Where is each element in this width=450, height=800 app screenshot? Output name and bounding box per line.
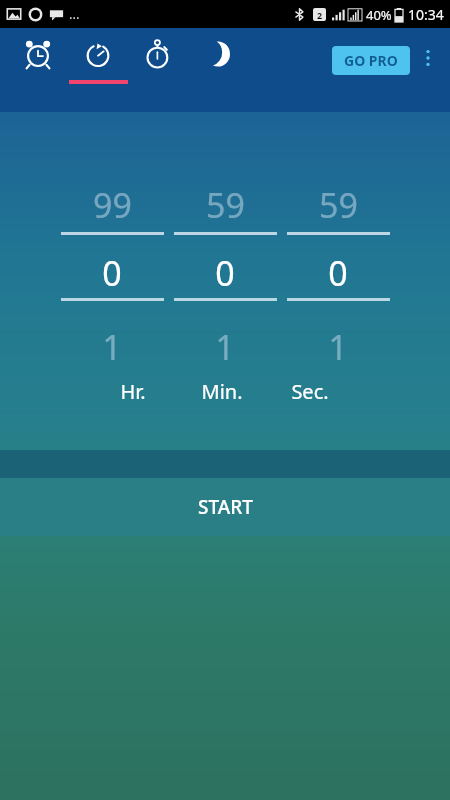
button[interactable]: 59	[288, 182, 388, 228]
button[interactable]: Timer	[68, 28, 128, 98]
button[interactable]: GO PRO	[332, 46, 410, 75]
staticText: Min.	[201, 378, 243, 405]
button[interactable]: 0	[288, 250, 388, 296]
staticText: START	[198, 494, 253, 520]
staticText: 40%	[366, 6, 392, 24]
button[interactable]: START	[0, 478, 450, 536]
staticText: 1	[215, 324, 235, 370]
staticText: 0	[215, 250, 235, 296]
button[interactable]: Stopwatch	[128, 28, 188, 98]
button[interactable]: 1	[175, 324, 275, 370]
staticText: Sec.	[291, 378, 329, 405]
button[interactable]: 59	[175, 182, 275, 228]
button[interactable]: Alarm	[8, 28, 68, 98]
staticText: Hr.	[120, 378, 146, 405]
button[interactable]: 0	[175, 250, 275, 296]
staticText: 59	[206, 182, 245, 228]
staticText: 1	[102, 324, 122, 370]
button[interactable]: 99	[62, 182, 162, 228]
button[interactable]: 1	[288, 324, 388, 370]
staticText: 0	[328, 250, 348, 296]
button[interactable]: Bedtime	[188, 28, 248, 98]
staticText: GO PRO	[344, 51, 398, 70]
button[interactable]: 1	[62, 324, 162, 370]
staticText: 59	[319, 182, 358, 228]
staticText: 1	[328, 324, 348, 370]
staticText: ...	[69, 5, 80, 23]
staticText: 10:34	[408, 5, 444, 24]
button[interactable]: 0	[62, 250, 162, 296]
staticText: 2	[317, 9, 323, 21]
staticText: 99	[93, 182, 132, 228]
button[interactable]: More options	[410, 40, 446, 76]
staticText: 0	[102, 250, 122, 296]
